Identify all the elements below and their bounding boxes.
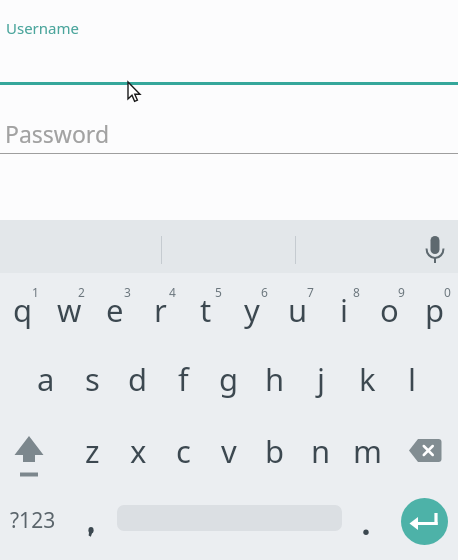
button[interactable]: g [206, 345, 252, 417]
button[interactable] [401, 498, 448, 545]
staticText: a [37, 358, 55, 400]
staticText: j [317, 358, 325, 400]
staticText: c [176, 430, 191, 472]
staticText: s [85, 358, 100, 400]
staticText: h [265, 358, 285, 400]
button[interactable]: f [160, 345, 206, 417]
staticText: t [200, 289, 212, 331]
button[interactable]: e [92, 273, 138, 345]
button[interactable]: ?123 [0, 489, 69, 560]
button[interactable] [342, 489, 388, 560]
staticText: d [128, 358, 148, 400]
button[interactable]: c [160, 417, 206, 489]
button[interactable] [69, 489, 115, 560]
button[interactable]: s [69, 345, 115, 417]
staticText: v [221, 430, 237, 472]
button[interactable]: l [389, 345, 435, 417]
staticText: 1 [32, 284, 39, 300]
button[interactable]: n [298, 417, 344, 489]
staticText: y [244, 289, 260, 331]
button[interactable]: h [252, 345, 298, 417]
button[interactable]: b [252, 417, 298, 489]
staticText: 4 [169, 284, 176, 300]
staticText: x [130, 430, 147, 472]
staticText: 9 [398, 284, 405, 300]
staticText: z [85, 430, 100, 472]
button[interactable]: i [321, 273, 367, 345]
staticText: o [380, 289, 399, 331]
staticText: 5 [215, 284, 222, 300]
staticText: 7 [307, 284, 314, 300]
staticText: m [353, 430, 382, 472]
button[interactable]: p [412, 273, 458, 345]
button[interactable]: r [137, 273, 183, 345]
staticText: q [13, 289, 33, 331]
staticText: n [311, 430, 331, 472]
button[interactable]: m [344, 417, 390, 489]
staticText: 0 [444, 284, 451, 300]
button[interactable]: q [0, 273, 46, 345]
staticText: u [288, 289, 308, 331]
staticText: 6 [261, 284, 268, 300]
button[interactable]: k [344, 345, 390, 417]
button[interactable]: w [46, 273, 92, 345]
button[interactable]: j [298, 345, 344, 417]
staticText: w [57, 289, 82, 331]
button[interactable]: a [23, 345, 69, 417]
button[interactable]: o [366, 273, 412, 345]
button[interactable]: t [183, 273, 229, 345]
button[interactable]: z [69, 417, 115, 489]
button[interactable] [419, 229, 451, 271]
staticText: 2 [78, 284, 85, 300]
button[interactable]: d [115, 345, 161, 417]
button[interactable] [389, 417, 458, 489]
staticText: g [219, 358, 239, 400]
button[interactable]: u [275, 273, 321, 345]
staticText: i [340, 289, 348, 331]
staticText: e [106, 289, 124, 331]
staticText: 8 [353, 284, 360, 300]
staticText: 3 [124, 284, 131, 300]
button[interactable]: v [206, 417, 252, 489]
staticText: Username [6, 18, 79, 38]
staticText: b [265, 430, 285, 472]
staticText: f [178, 358, 189, 400]
staticText: p [425, 289, 445, 331]
button[interactable]: y [229, 273, 275, 345]
staticText: ?123 [10, 506, 56, 535]
staticText: r [154, 289, 167, 331]
staticText: l [408, 358, 416, 400]
staticText: Password [5, 118, 110, 149]
button[interactable] [0, 417, 69, 489]
staticText: k [359, 358, 376, 400]
button[interactable]: x [115, 417, 161, 489]
